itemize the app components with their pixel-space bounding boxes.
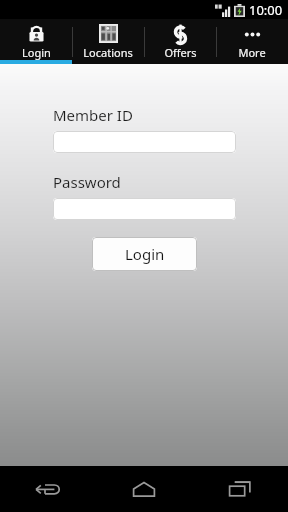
button[interactable]: Recents	[192, 466, 288, 512]
button[interactable]: Locations	[72, 19, 144, 64]
other: Offers	[171, 24, 190, 43]
button[interactable]: More	[216, 19, 288, 64]
button[interactable]	[53, 131, 236, 153]
button[interactable]: Login	[92, 237, 197, 271]
button[interactable]: Back	[0, 466, 96, 512]
staticText: Member ID	[53, 105, 133, 125]
other: More	[243, 24, 262, 43]
button[interactable]	[53, 198, 236, 220]
button[interactable]: Home	[96, 466, 192, 512]
staticText: Password	[53, 172, 121, 192]
staticText: More	[238, 45, 266, 60]
button[interactable]: Offers	[144, 19, 216, 64]
staticText: Login	[125, 244, 165, 264]
staticText: 10:00	[249, 1, 283, 19]
staticText: Locations	[83, 45, 133, 60]
staticText: Login	[22, 45, 51, 60]
button[interactable]: Login	[0, 19, 72, 64]
other: Locations	[99, 24, 118, 43]
staticText: Offers	[164, 45, 197, 60]
other: Login	[27, 24, 46, 43]
